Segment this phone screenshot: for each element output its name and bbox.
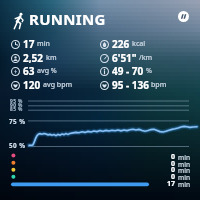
staticText: min <box>178 173 190 182</box>
staticText: min <box>178 153 190 162</box>
staticText: 95 - 136 <box>112 78 149 92</box>
staticText: 226 <box>112 37 130 51</box>
staticText: min <box>37 39 50 49</box>
staticText: 17 <box>167 179 176 189</box>
staticText: kcal <box>132 39 146 49</box>
staticText: 0 <box>171 165 176 175</box>
staticText: 0 <box>171 172 176 182</box>
staticText: 6'51" <box>112 51 137 65</box>
staticText: 95 % <box>10 98 23 105</box>
staticText: 0 <box>171 152 176 162</box>
staticText: km <box>46 53 57 63</box>
staticText: 90 % <box>10 102 23 109</box>
staticText: 17 <box>23 37 35 51</box>
button[interactable]: Pause <box>178 11 189 22</box>
staticText: RUNNING <box>29 9 106 29</box>
staticText: avg bpm <box>43 80 73 90</box>
staticText: min <box>178 166 190 175</box>
staticText: min <box>178 180 190 189</box>
staticText: /km <box>139 53 153 63</box>
staticText: 120 <box>23 78 41 92</box>
staticText: 75 % <box>9 117 26 126</box>
staticText: 63 <box>23 64 35 78</box>
staticText: 85 % <box>10 106 23 113</box>
staticText: 2,52 <box>23 51 44 65</box>
staticText: bpm <box>151 80 167 90</box>
staticText: min <box>178 160 190 169</box>
staticText: 49 - 70 <box>112 64 144 78</box>
staticText: % <box>146 66 152 76</box>
staticText: 0 <box>171 159 176 169</box>
staticText: avg % <box>37 66 57 76</box>
staticText: 50 % <box>9 141 26 150</box>
